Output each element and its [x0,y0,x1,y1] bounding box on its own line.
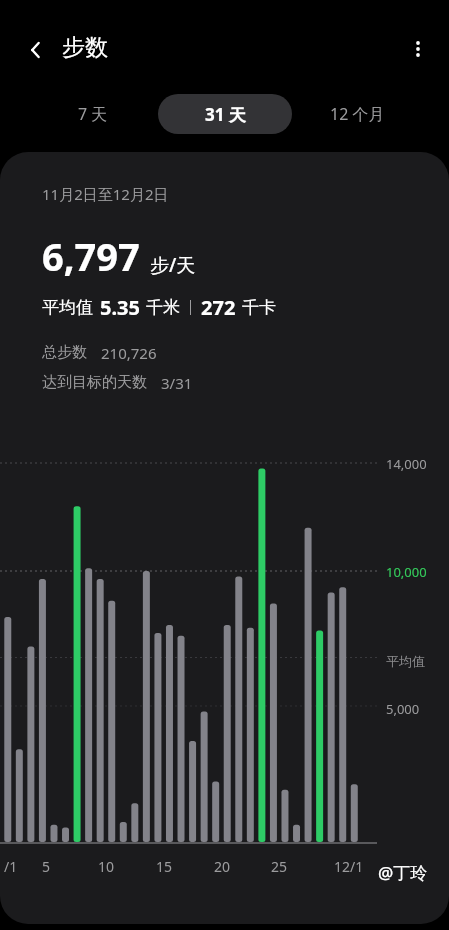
staticText: 步数 [62,33,108,62]
button[interactable]: Back [14,28,58,72]
staticText: 12 个月 [330,103,385,125]
staticText: 31 天 [205,103,246,126]
staticText: 20 [214,857,231,876]
staticText: 25 [271,857,288,876]
staticText: 210,726 [101,343,157,363]
button[interactable]: 7 天 [40,94,145,134]
staticText: 7 天 [78,103,108,125]
staticText: 平均值 [42,297,93,318]
staticText: 6,797 [42,230,140,282]
staticText: 10,000 [386,563,427,581]
staticText: 3/31 [161,373,193,393]
staticText: 5.35 [100,294,140,321]
staticText: 12/1 [334,857,364,876]
staticText: 总步数 [42,343,87,362]
staticText: /1 [4,857,18,876]
button[interactable]: 12 个月 [302,94,412,134]
staticText: 272 [201,294,236,321]
staticText: @丁玲 [378,861,428,884]
staticText: 15 [156,857,173,876]
staticText: 千米 [146,297,180,318]
staticText: 14,000 [386,455,427,473]
staticText: 步/天 [150,252,196,278]
staticText: 达到目标的天数 [42,373,147,392]
button[interactable]: 31 天 [158,94,292,134]
staticText: 10 [98,857,115,876]
staticText: 5,000 [386,700,420,718]
staticText: 千卡 [242,297,276,318]
staticText: 11月2日至12月2日 [42,184,169,204]
button[interactable]: More options [395,26,441,72]
staticText: 平均值 [386,653,425,669]
staticText: 5 [42,857,51,876]
